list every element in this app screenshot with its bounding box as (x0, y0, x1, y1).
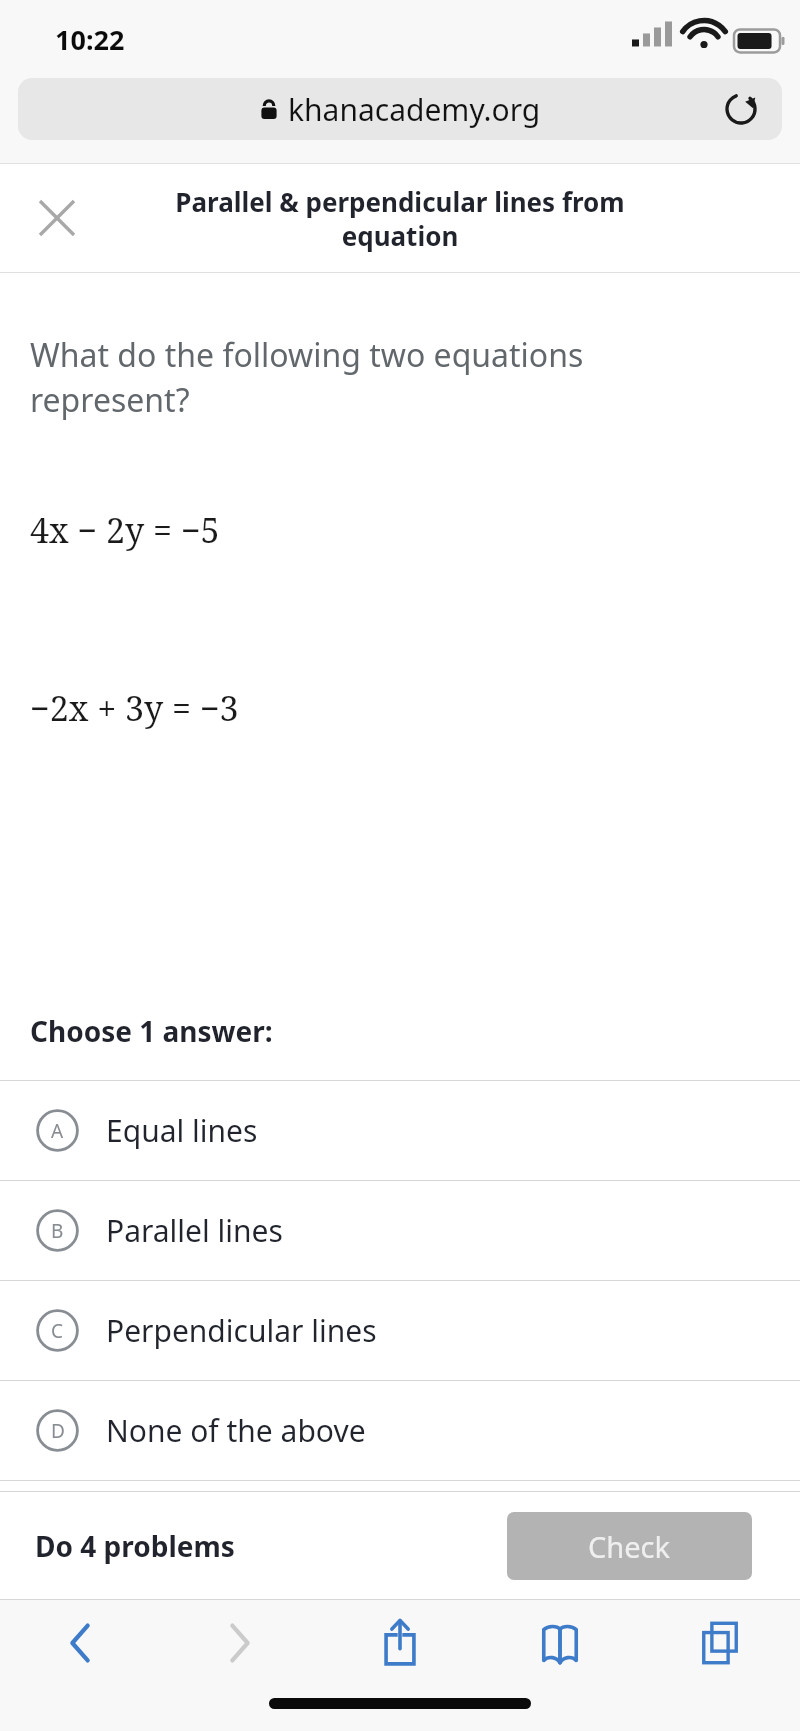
staticText: 10:22 (55, 21, 125, 58)
staticText: Parallel lines (106, 1210, 283, 1251)
button[interactable]: Back (0, 1600, 160, 1686)
staticText: What do the following two equations repr… (30, 333, 622, 421)
staticText: Do 4 problems (35, 1527, 235, 1565)
staticText: B (51, 1218, 64, 1244)
button[interactable]: D (0, 1381, 800, 1480)
button[interactable]: Close (22, 183, 92, 253)
staticText: C (51, 1318, 64, 1344)
staticText: 4x − 2y = −5 (30, 507, 220, 553)
staticText: Choose 1 answer: (30, 1012, 273, 1050)
button[interactable]: B (0, 1181, 800, 1280)
button[interactable]: Reload (714, 82, 768, 136)
staticText: khanacademy.org (288, 89, 541, 130)
staticText: Parallel & perpendicular lines from equa… (118, 184, 682, 253)
staticText: Equal lines (106, 1110, 258, 1151)
button[interactable]: Share (320, 1600, 480, 1686)
button[interactable]: khanacademy.org (18, 78, 782, 140)
staticText: −2x + 3y = −3 (30, 685, 239, 731)
button[interactable]: Check (507, 1512, 752, 1580)
button[interactable]: Bookmarks (480, 1600, 640, 1686)
button[interactable]: Tabs (640, 1600, 800, 1686)
button[interactable]: A (0, 1081, 800, 1180)
staticText: None of the above (106, 1410, 366, 1451)
staticText: Perpendicular lines (106, 1310, 377, 1351)
staticText: Check (588, 1527, 671, 1566)
staticText: A (51, 1118, 64, 1144)
button[interactable]: Forward (160, 1600, 320, 1686)
staticText: D (51, 1418, 65, 1444)
button[interactable]: C (0, 1281, 800, 1380)
